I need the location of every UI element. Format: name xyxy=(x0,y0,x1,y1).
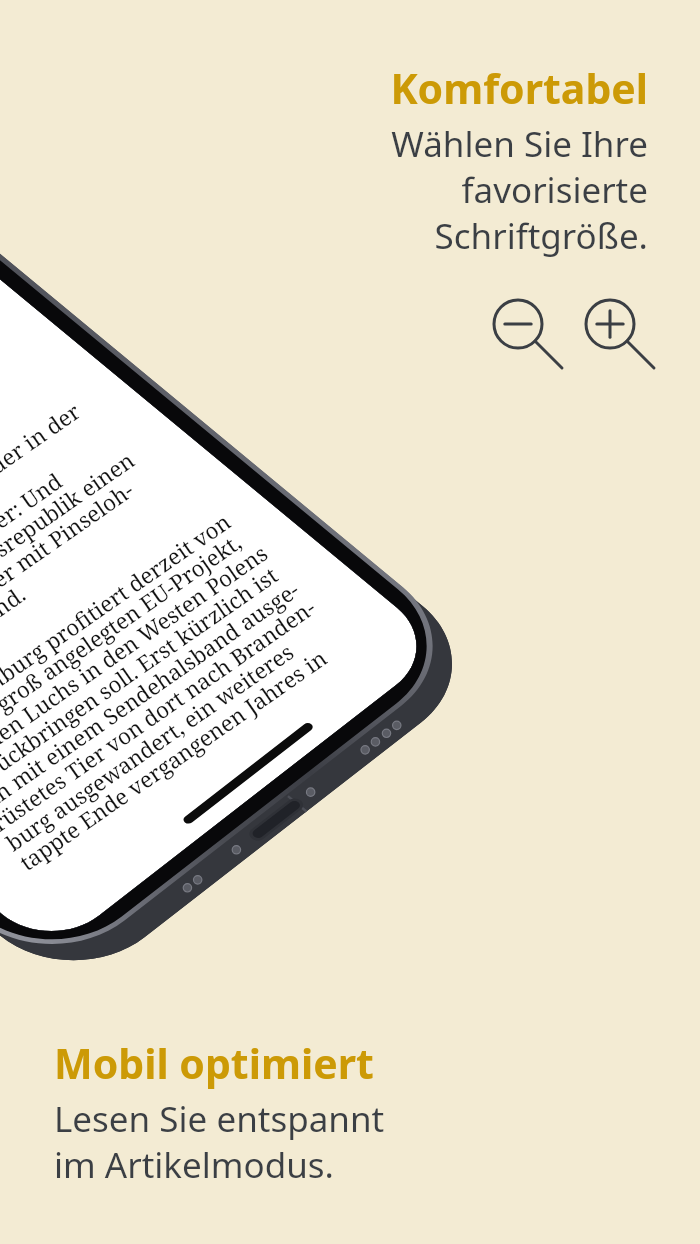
staticText: Mobil optimiert xyxy=(54,1035,374,1091)
staticText: Brandenburg profitiert derzeit von einem… xyxy=(0,494,349,878)
staticText: Der Luchs ist in Brandenburg wohl wieder… xyxy=(0,209,62,419)
staticText: Komfortabel xyxy=(390,60,648,116)
button[interactable]: Schrift verkleinern xyxy=(484,290,556,362)
staticText: Der Luchs ist wieder in der Eifel, dann … xyxy=(0,386,168,681)
button[interactable]: Schrift vergrößern xyxy=(576,290,648,362)
staticText: Wählen Sie Ihre favorisierte Schriftgröß… xyxy=(338,120,648,259)
staticText: Lesen Sie entspannt im Artikelmodus. xyxy=(54,1095,414,1188)
